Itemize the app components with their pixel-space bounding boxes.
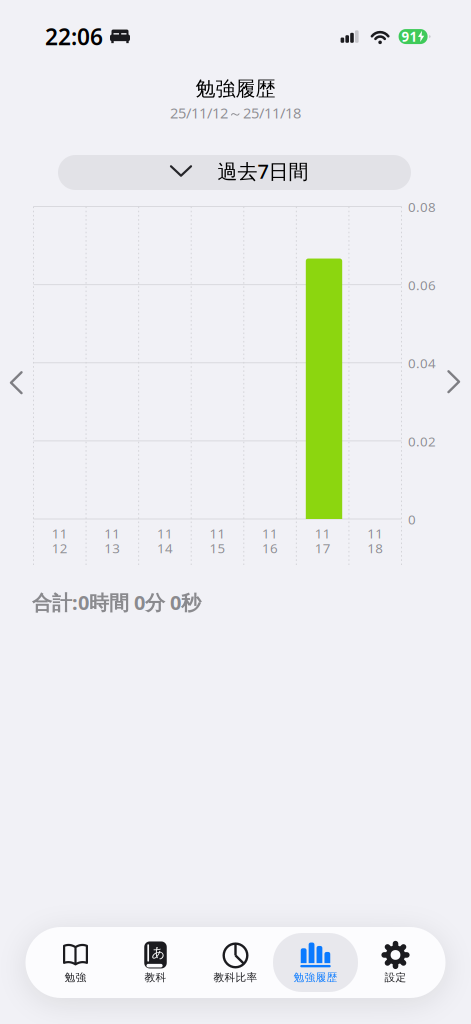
staticText: 0.08 xyxy=(408,198,436,216)
staticText: あ xyxy=(151,944,165,961)
staticText: 91 xyxy=(402,28,418,45)
staticText: 勉強履歴 xyxy=(195,76,275,101)
staticText: 勉強 xyxy=(64,971,86,984)
staticText: 25/11/12～25/11/18 xyxy=(170,103,301,123)
staticText: 設定 xyxy=(384,971,406,984)
staticText: 過去7日間 xyxy=(217,158,308,184)
staticText: 17 xyxy=(315,539,331,557)
button[interactable]: 設定 xyxy=(355,927,435,998)
staticText: 12 xyxy=(52,539,68,557)
staticText: 教科 xyxy=(144,971,166,984)
button[interactable]: 前の期間 xyxy=(10,371,23,394)
staticText: 11 xyxy=(262,524,278,542)
staticText: 11 xyxy=(209,524,225,542)
button[interactable]: 勉強 xyxy=(35,927,115,998)
staticText: 18 xyxy=(367,539,383,557)
staticText: 勉強履歴 xyxy=(293,971,337,984)
staticText: 15 xyxy=(209,539,225,557)
staticText: 11 xyxy=(157,524,173,542)
staticText: 11 xyxy=(104,524,120,542)
staticText: 合計:0時間 0分 0秒 xyxy=(32,589,201,616)
staticText: 22:06 xyxy=(45,21,103,52)
button[interactable]: あ xyxy=(115,927,195,998)
button[interactable]: 教科比率 xyxy=(195,927,275,998)
staticText: 11 xyxy=(315,524,331,542)
staticText: 0 xyxy=(408,510,416,528)
button[interactable]: 次の期間 xyxy=(447,370,460,393)
staticText: 14 xyxy=(157,539,173,557)
staticText: 16 xyxy=(262,539,278,557)
staticText: 0.02 xyxy=(408,432,436,450)
staticText: 11 xyxy=(367,524,383,542)
staticText: 0.04 xyxy=(408,354,436,372)
button[interactable]: 勉強履歴 xyxy=(275,927,355,998)
staticText: 0.06 xyxy=(408,276,436,294)
staticText: 13 xyxy=(104,539,120,557)
staticText: 11 xyxy=(52,524,68,542)
staticText: 教科比率 xyxy=(213,971,257,984)
button[interactable]: 過去7日間 xyxy=(58,155,411,190)
